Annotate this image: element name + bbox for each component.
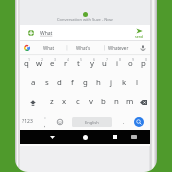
button[interactable]: l [131, 74, 144, 93]
button[interactable]: What's [66, 41, 101, 55]
button[interactable]: . [117, 112, 131, 131]
button[interactable]: m [123, 93, 136, 112]
staticText: 6 [93, 57, 96, 62]
button[interactable]: f [66, 74, 79, 93]
button[interactable]: v [84, 93, 97, 112]
staticText: . [123, 118, 125, 125]
staticText: What [40, 30, 53, 37]
staticText: j [110, 77, 113, 88]
staticText: What [43, 45, 55, 51]
button[interactable]: y [85, 55, 98, 74]
staticText: m [126, 96, 134, 107]
button[interactable]: Recent apps [108, 130, 122, 144]
button[interactable]: s [40, 74, 53, 93]
staticText: q [24, 58, 29, 69]
button[interactable]: What [32, 41, 66, 55]
staticText: , [44, 121, 46, 128]
button[interactable]: e [46, 55, 59, 74]
staticText: ° [44, 116, 46, 121]
staticText: English [85, 120, 99, 125]
button[interactable]: q [20, 55, 33, 74]
button[interactable]: a [27, 74, 40, 93]
staticText: send [135, 34, 143, 39]
staticText: w [36, 58, 43, 69]
button[interactable]: Hide keyboard [45, 130, 59, 144]
staticText: i [116, 58, 119, 69]
button[interactable]: u [98, 55, 111, 74]
button[interactable]: send [134, 28, 144, 39]
button[interactable]: Shift [20, 93, 45, 112]
button[interactable]: Home [78, 130, 92, 144]
button[interactable]: w [33, 55, 46, 74]
staticText: p [141, 58, 146, 69]
button[interactable]: j [105, 74, 118, 93]
button[interactable]: o [124, 55, 137, 74]
staticText: r [64, 58, 68, 69]
staticText: z [50, 96, 54, 107]
button[interactable]: p [137, 55, 150, 74]
button[interactable]: Search [132, 115, 146, 129]
button[interactable]: n [110, 93, 123, 112]
staticText: s [45, 77, 49, 88]
staticText: t [77, 58, 80, 69]
staticText: 4 [67, 57, 70, 62]
staticText: d [57, 77, 62, 88]
button[interactable]: r [59, 55, 72, 74]
button[interactable]: x [58, 93, 71, 112]
button[interactable]: Add attachment [20, 25, 150, 41]
staticText: h [96, 77, 101, 88]
staticText: 3 [54, 57, 57, 62]
staticText: ?123 [22, 118, 33, 125]
button[interactable]: Suze avatar [83, 12, 88, 17]
button[interactable]: b [97, 93, 110, 112]
staticText: o [128, 58, 133, 69]
staticText: u [102, 58, 107, 69]
staticText: 1 [28, 57, 31, 62]
staticText: b [101, 96, 106, 107]
staticText: 0 [145, 57, 148, 62]
staticText: y [90, 58, 94, 69]
staticText: e [50, 58, 55, 69]
staticText: v [89, 96, 93, 107]
button[interactable]: c [71, 93, 84, 112]
button[interactable]: Emoji [53, 112, 67, 131]
button[interactable]: Backspace [136, 93, 150, 112]
button[interactable]: English [72, 117, 112, 127]
button[interactable]: Google [22, 41, 32, 55]
staticText: g [83, 77, 88, 88]
button[interactable]: Switch keyboard [127, 130, 141, 144]
button[interactable]: i [111, 55, 124, 74]
button[interactable]: Add attachment [28, 30, 34, 36]
staticText: 5 [80, 57, 83, 62]
staticText: n [114, 96, 119, 107]
staticText: Whatever [108, 45, 129, 51]
button[interactable]: k [118, 74, 131, 93]
staticText: 8 [119, 57, 122, 62]
button[interactable]: ° [38, 112, 52, 131]
button[interactable]: ?123 [20, 112, 34, 131]
button[interactable]: Voice input [136, 41, 150, 55]
staticText: a [31, 77, 36, 88]
staticText: c [76, 96, 80, 107]
button[interactable]: Whatever [101, 41, 136, 55]
button[interactable]: d [53, 74, 66, 93]
staticText: 9 [132, 57, 135, 62]
button[interactable]: h [92, 74, 105, 93]
button[interactable]: z [45, 93, 58, 112]
staticText: k [122, 77, 127, 88]
staticText: What's [76, 45, 91, 51]
staticText: 7 [106, 57, 109, 62]
button[interactable]: g [79, 74, 92, 93]
staticText: l [136, 77, 139, 88]
staticText: f [71, 77, 74, 88]
button[interactable]: t [72, 55, 85, 74]
staticText: Conversation with Suze - Now [57, 17, 113, 22]
staticText: x [62, 96, 67, 107]
staticText: 2 [41, 57, 44, 62]
